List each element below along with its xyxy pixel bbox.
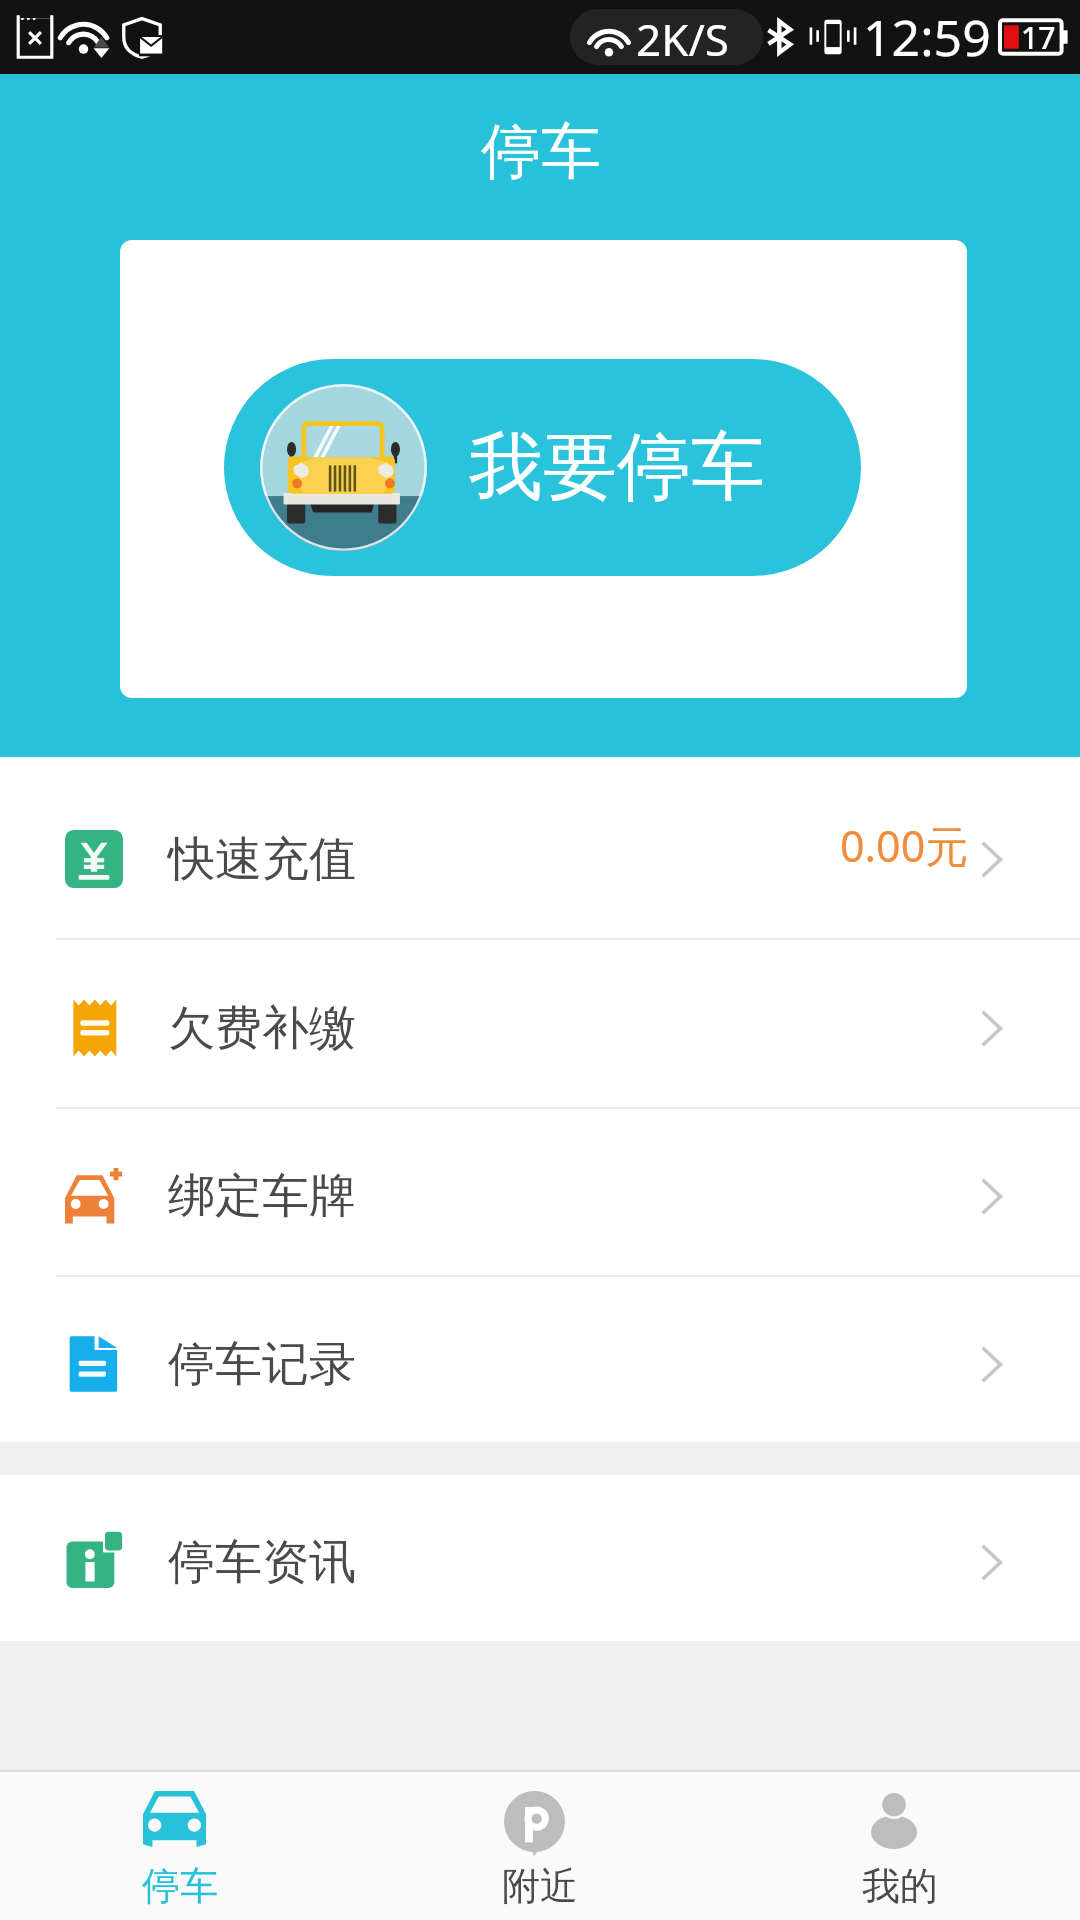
staticText: 2K/S xyxy=(636,9,729,65)
staticText: 0.00元 xyxy=(840,816,969,875)
staticText: 欠费补缴 xyxy=(168,999,356,1058)
staticText: 绑定车牌 xyxy=(168,1167,356,1226)
staticText: 12:59 xyxy=(863,3,991,71)
staticText: 我的 xyxy=(862,1862,938,1910)
staticText: 停车 xyxy=(481,114,601,190)
staticText: 17 xyxy=(1021,17,1056,58)
button[interactable]: 停车 xyxy=(0,1772,360,1920)
button[interactable]: 我要停车 xyxy=(224,359,861,576)
button[interactable]: 停车记录 xyxy=(0,1277,1080,1442)
button[interactable]: 快速充值 xyxy=(0,771,1080,940)
button[interactable]: 附近 xyxy=(360,1772,720,1920)
staticText: 我要停车 xyxy=(469,421,765,514)
button[interactable]: 欠费补缴 xyxy=(0,940,1080,1109)
staticText: 快速充值 xyxy=(168,830,356,889)
button[interactable]: 我的 xyxy=(720,1772,1080,1920)
button[interactable]: 绑定车牌 xyxy=(0,1109,1080,1277)
staticText: 停车记录 xyxy=(168,1335,356,1394)
staticText: 附近 xyxy=(502,1862,578,1910)
button[interactable]: 停车资讯 xyxy=(0,1475,1080,1641)
staticText: 停车 xyxy=(142,1862,218,1910)
staticText: 停车资讯 xyxy=(168,1533,356,1592)
